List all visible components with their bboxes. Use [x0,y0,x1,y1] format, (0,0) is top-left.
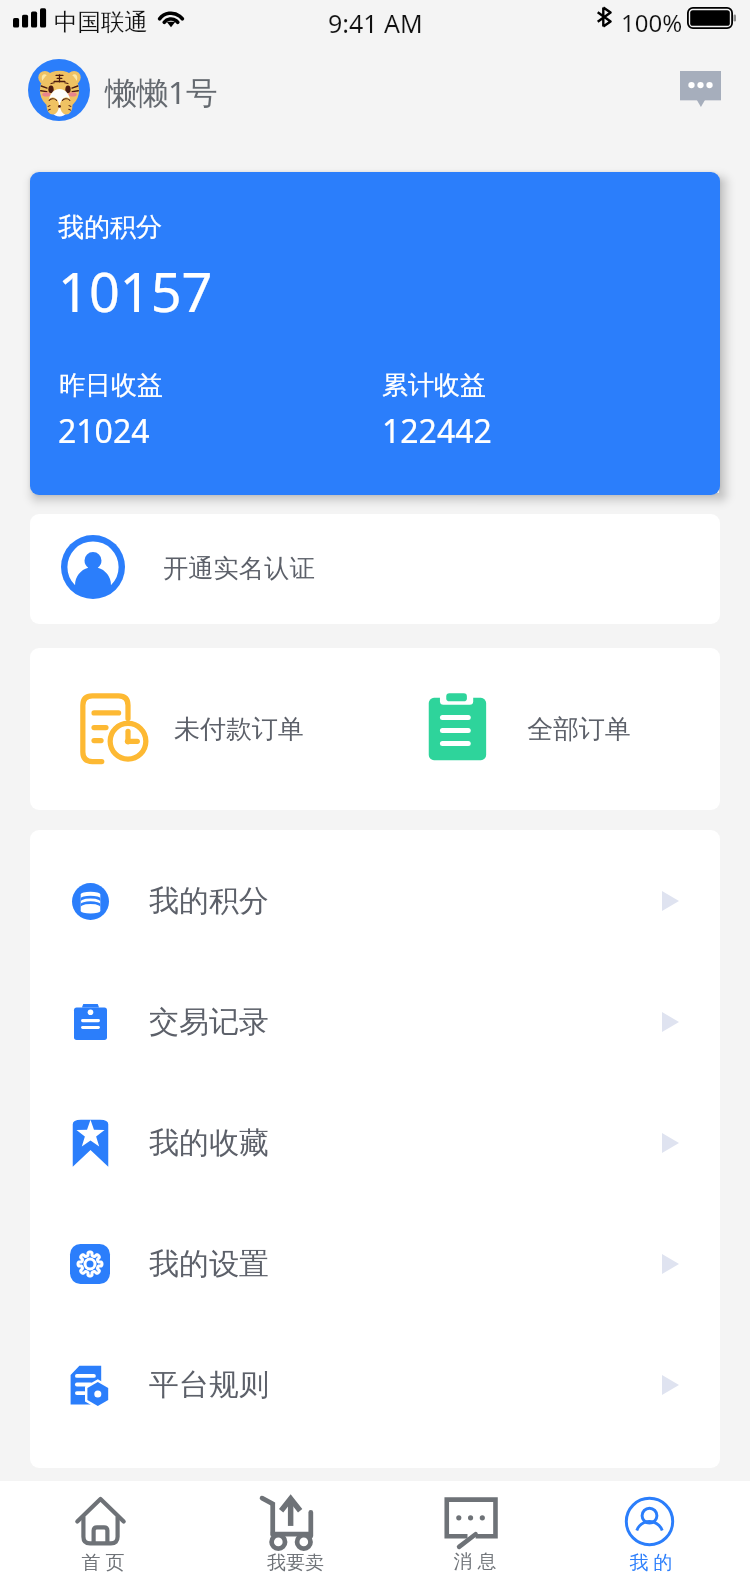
staticText: 累计收益 [382,369,486,402]
staticText: 开通实名认证 [163,553,315,585]
staticText: 中国联通 [54,7,148,37]
button[interactable]: 未付款订单 [50,648,390,810]
button[interactable]: 懒懒1号 [28,59,218,121]
staticText: 10157 [58,254,213,328]
staticText: 交易记录 [149,1003,269,1041]
button[interactable]: 我的积分 [30,172,720,495]
staticText: 昨日收益 [59,369,163,402]
staticText: 未付款订单 [174,713,304,746]
staticText: 9:41 AM [328,6,423,40]
staticText: 平台规则 [149,1366,269,1404]
button[interactable]: 首页 [7,1481,194,1582]
staticText: 懒懒1号 [105,70,218,113]
button[interactable]: 我的 [556,1481,743,1582]
button[interactable]: 我的收藏 [30,1082,720,1203]
button[interactable]: 全部订单 [400,648,710,810]
button[interactable]: 消息 [376,1481,563,1582]
staticText: 我要卖 [267,1551,324,1575]
button[interactable]: 交易记录 [30,961,720,1082]
staticText: 21024 [58,409,150,453]
staticText: 我的积分 [149,882,269,920]
staticText: 消息 [451,1550,499,1574]
staticText: 我的设置 [149,1245,269,1283]
button[interactable]: 平台规则 [30,1324,720,1445]
staticText: 我的 [627,1551,675,1575]
button[interactable]: 我的设置 [30,1203,720,1324]
staticText: 122442 [382,409,492,453]
staticText: 我的收藏 [149,1124,269,1162]
button[interactable]: 我要卖 [193,1481,380,1582]
button[interactable]: 开通实名认证 [30,514,720,624]
staticText: 我的积分 [58,211,162,244]
staticText: 全部订单 [527,713,631,746]
button[interactable]: More options [676,66,724,112]
button[interactable]: 我的积分 [30,840,720,961]
staticText: 首页 [79,1551,127,1575]
staticText: 100% [621,6,683,39]
